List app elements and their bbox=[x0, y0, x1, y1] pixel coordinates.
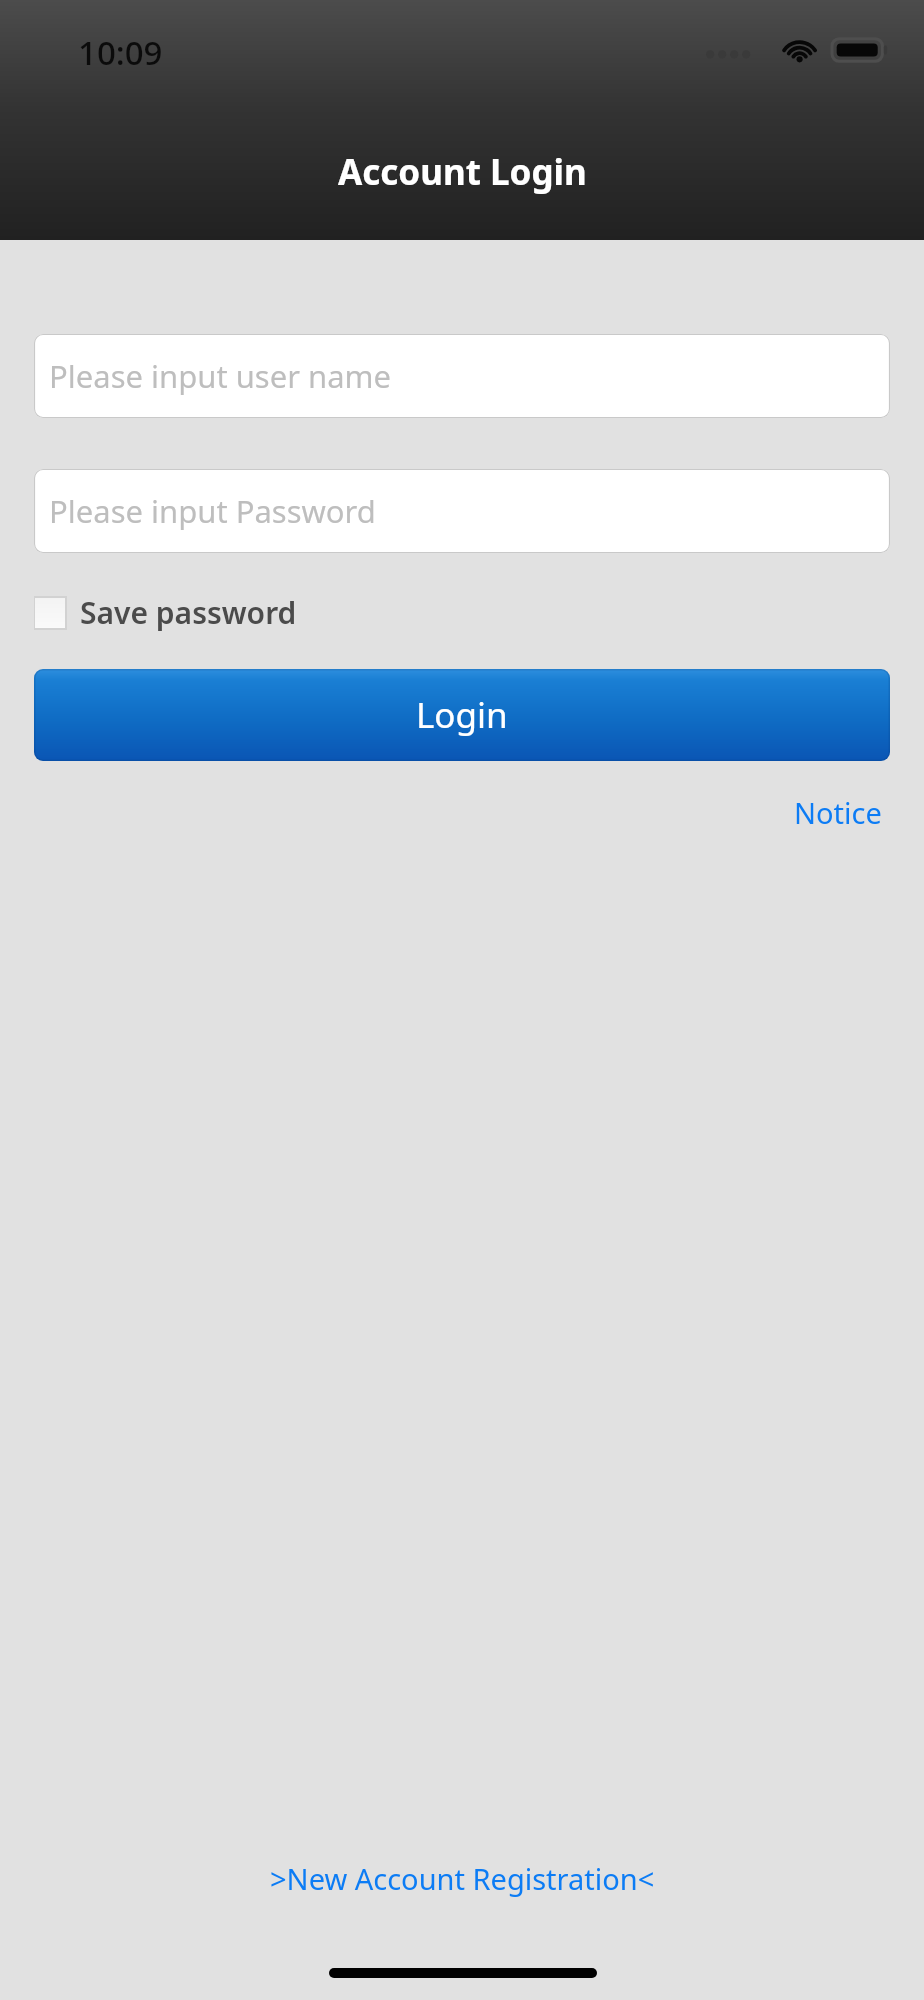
staticText: Notice bbox=[794, 793, 882, 832]
button[interactable]: Please input user name bbox=[34, 334, 890, 418]
button[interactable]: Please input Password bbox=[34, 469, 890, 553]
button[interactable]: Save password bbox=[34, 588, 307, 637]
staticText: Login bbox=[416, 691, 508, 739]
button[interactable]: Notice bbox=[782, 785, 894, 840]
staticText: Please input user name bbox=[49, 355, 392, 397]
button[interactable]: Login bbox=[34, 669, 890, 761]
staticText: 10:09 bbox=[78, 30, 163, 75]
staticText: Please input Password bbox=[49, 490, 376, 532]
staticText: Save password bbox=[80, 592, 297, 633]
button[interactable]: >New Account Registration< bbox=[258, 1851, 667, 1906]
staticText: Account Login bbox=[338, 148, 587, 196]
staticText: >New Account Registration< bbox=[270, 1859, 655, 1898]
